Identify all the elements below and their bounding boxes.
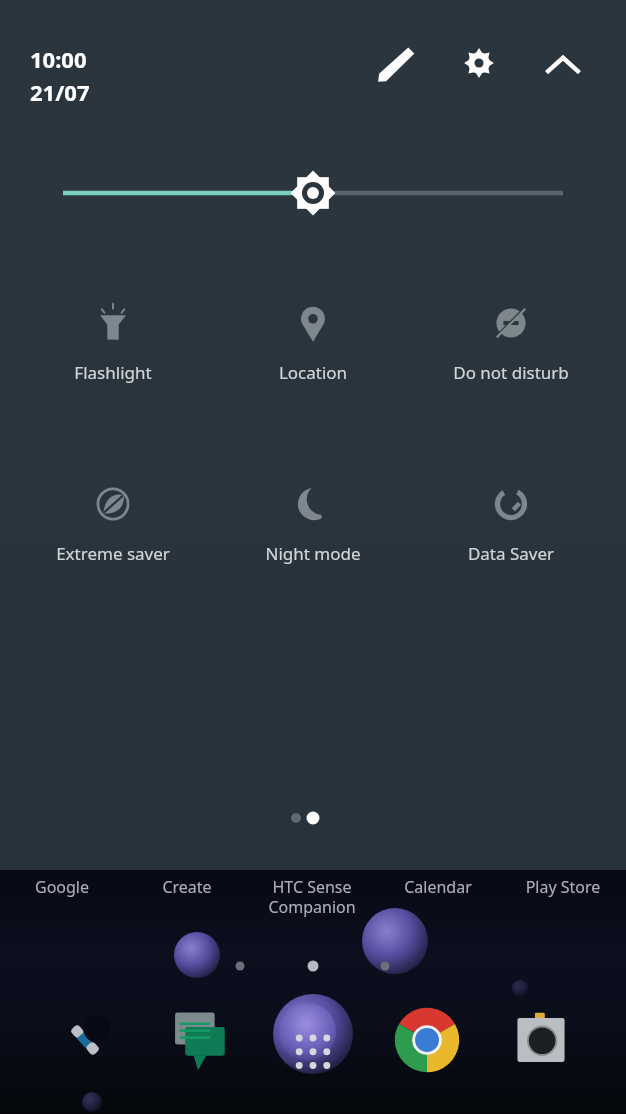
staticText: Data Saver	[421, 542, 601, 565]
button[interactable]: Camera	[501, 1022, 626, 1114]
staticText: 21/07	[30, 77, 90, 107]
button[interactable]: Chrome	[376, 1022, 501, 1114]
button[interactable]: Flashlight	[23, 297, 203, 384]
button[interactable]: Apps	[251, 1022, 376, 1114]
button[interactable]: Edit	[368, 35, 424, 91]
button[interactable]: Location	[223, 297, 403, 384]
staticText: Extreme saver	[23, 542, 203, 565]
staticText: Calendar	[368, 876, 508, 898]
staticText: Google	[0, 876, 132, 898]
button[interactable]: Messages	[126, 1022, 251, 1114]
staticText: HTC Sense	[242, 876, 382, 898]
button[interactable]: Collapse	[535, 35, 591, 91]
button[interactable]: Settings	[451, 35, 507, 91]
button[interactable]: Phone	[0, 1022, 126, 1114]
staticText: Companion	[242, 896, 382, 918]
staticText: Flashlight	[23, 361, 203, 384]
button[interactable]: Data Saver	[421, 478, 601, 565]
staticText: Create	[117, 876, 257, 898]
button[interactable]: Extreme saver	[23, 478, 203, 565]
staticText: Play Store	[493, 876, 626, 898]
staticText: Do not disturb	[421, 361, 601, 384]
button[interactable]: Night mode	[223, 478, 403, 565]
staticText: Location	[223, 361, 403, 384]
staticText: 10:00	[30, 44, 87, 74]
button[interactable]: Brightness	[0, 160, 626, 230]
staticText: Night mode	[223, 542, 403, 565]
button[interactable]: Do not disturb	[421, 297, 601, 384]
